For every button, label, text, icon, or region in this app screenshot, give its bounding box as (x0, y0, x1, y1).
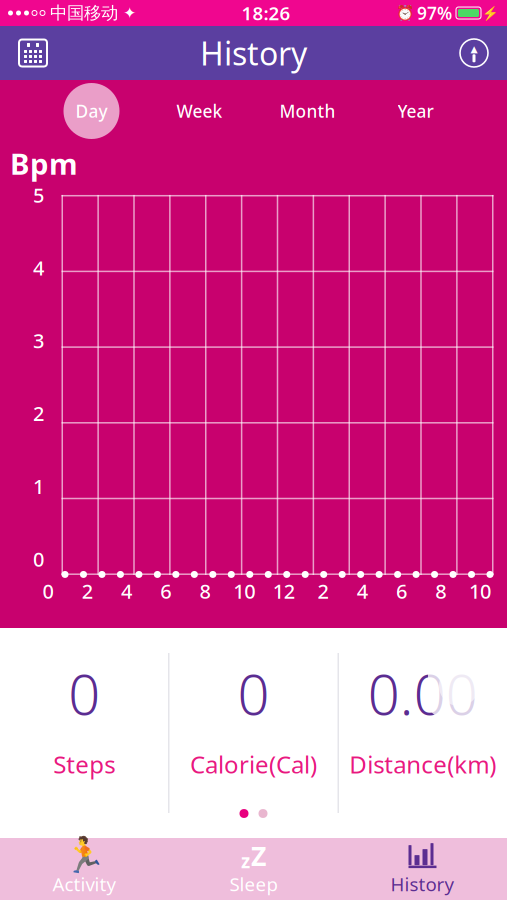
staticText: 4 (121, 578, 132, 604)
button[interactable]: z (169, 838, 338, 900)
staticText: 6 (160, 578, 171, 604)
staticText: 0 (68, 656, 100, 730)
staticText: 8 (435, 578, 446, 604)
staticText: 6 (396, 578, 407, 604)
staticText: Day (75, 99, 107, 122)
staticText: 2 (33, 400, 44, 427)
button[interactable]: Month (253, 81, 361, 141)
staticText: 🏃 (63, 836, 106, 875)
staticText: z (241, 848, 250, 873)
staticText: Distance(km) (349, 748, 496, 780)
staticText: 18:26 (241, 1, 290, 25)
staticText: 3 (33, 327, 44, 354)
staticText: Week (176, 99, 222, 122)
button[interactable]: Week (145, 81, 253, 141)
staticText: 4 (33, 254, 44, 281)
staticText: History (200, 32, 307, 74)
staticText: 12 (273, 578, 295, 604)
staticText: Month (279, 99, 335, 122)
staticText: History (390, 872, 454, 896)
button[interactable]: History (338, 838, 507, 900)
staticText: Calorie(Cal) (190, 748, 317, 780)
staticText: 0 (42, 578, 53, 604)
staticText: 1 (33, 473, 44, 499)
staticText: 8 (200, 578, 211, 604)
staticText: 中国移动 (50, 2, 118, 24)
staticText: 10 (233, 578, 255, 604)
staticText: 5 (33, 182, 44, 208)
button[interactable]: 🏃 (0, 838, 169, 900)
staticText: 4 (357, 578, 368, 604)
button[interactable]: Year (361, 81, 469, 141)
staticText: 2 (317, 578, 328, 604)
button[interactable]: Day (37, 81, 145, 141)
staticText: 0 (33, 546, 44, 572)
staticText: Sleep (229, 872, 277, 896)
staticText: Z (251, 838, 266, 873)
button[interactable]: Calendar (10, 26, 56, 80)
staticText: 2 (82, 578, 93, 604)
button[interactable]: Upload (451, 26, 497, 80)
staticText: ▲ (470, 44, 477, 54)
staticText: 0 (237, 656, 269, 730)
staticText: Bpm (10, 144, 78, 183)
staticText: 97% (417, 1, 452, 24)
staticText: ✦ (123, 4, 136, 22)
staticText: ⏰ (396, 5, 414, 21)
staticText: Year (397, 99, 433, 122)
staticText: 0.00 (368, 656, 478, 730)
staticText: 10 (469, 578, 491, 604)
staticText: Steps (53, 748, 115, 780)
staticText: ⚡ (482, 5, 499, 21)
staticText: Activity (52, 872, 116, 896)
